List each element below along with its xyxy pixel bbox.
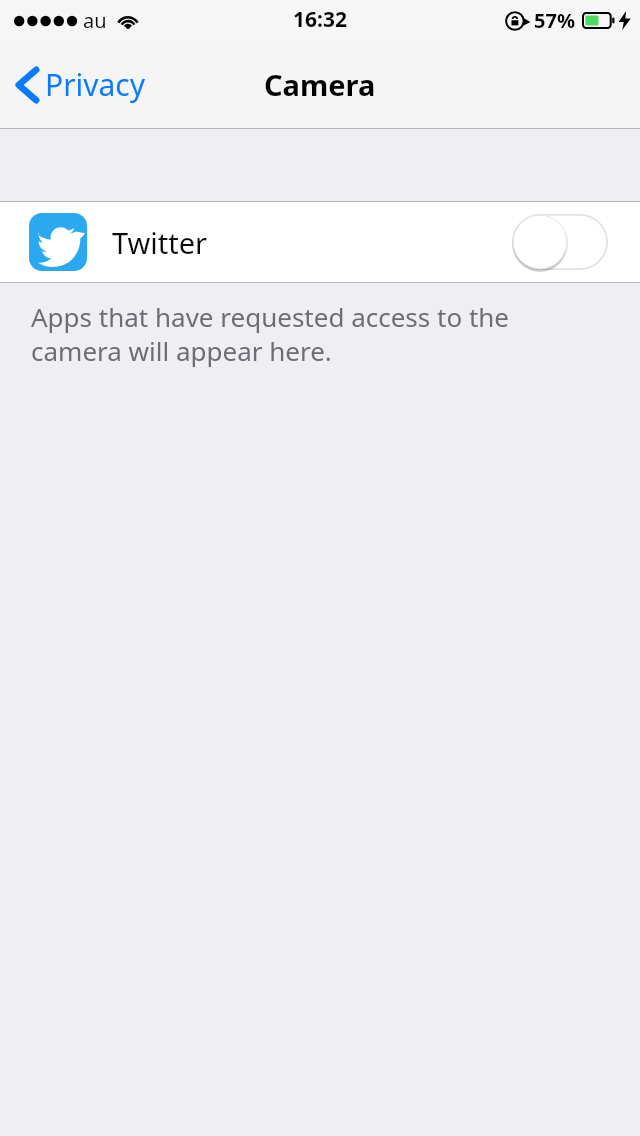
staticText: 57%: [534, 7, 575, 34]
staticText: Twitter: [112, 223, 208, 262]
staticText: Privacy: [45, 64, 146, 105]
staticText: Camera: [264, 65, 376, 104]
staticText: Apps that have requested access to the c…: [31, 299, 600, 368]
staticText: 16:32: [293, 5, 347, 34]
button[interactable]: Camera access toggle for Twitter: [512, 214, 608, 270]
button[interactable]: Twitter: [0, 202, 640, 282]
staticText: au: [83, 7, 107, 34]
button[interactable]: Privacy: [12, 58, 150, 111]
